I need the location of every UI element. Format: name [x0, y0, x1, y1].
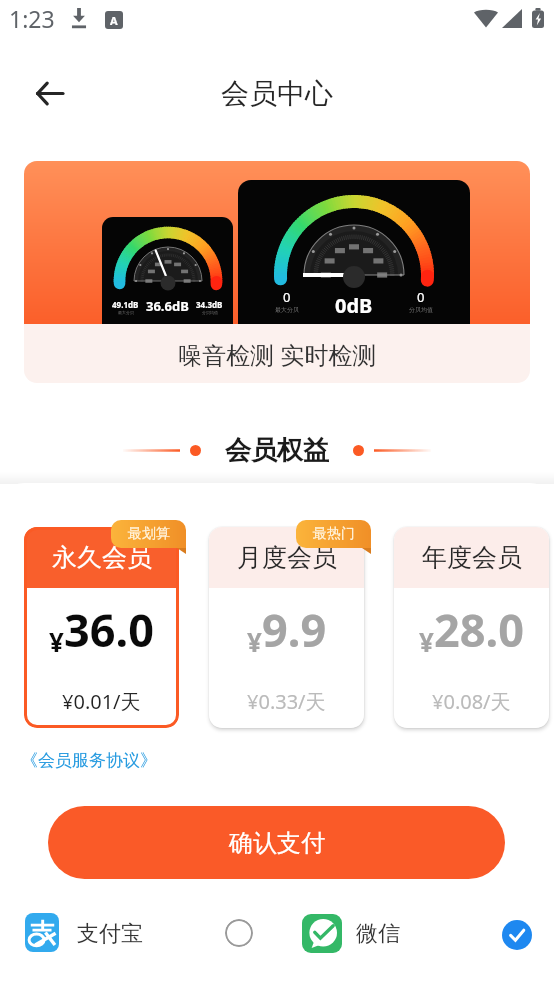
staticText: 月度会员 [237, 542, 337, 573]
button[interactable]: WeChat selected [502, 920, 532, 950]
button[interactable]: 《会员服务协议》 [21, 750, 157, 771]
staticText: ¥0.01/天 [62, 688, 141, 715]
staticText: 0dB [335, 292, 373, 319]
staticText: 噪音检测 实时检测 [178, 338, 377, 371]
staticText: 34.3dB [196, 299, 223, 310]
staticText: 会员权益 [225, 434, 329, 467]
staticText: 微信 [356, 920, 400, 948]
staticText: ¥0.33/天 [247, 688, 326, 715]
staticText: A [110, 13, 118, 28]
staticText: ¥0.08/天 [432, 688, 511, 715]
staticText: 确认支付 [229, 828, 325, 858]
staticText: 支付宝 [77, 920, 143, 948]
button[interactable]: 年度会员 [394, 527, 549, 728]
staticText: 36.0 [64, 599, 154, 660]
staticText: 分贝均值 [409, 306, 433, 314]
staticText: 36.6dB [146, 297, 189, 315]
button[interactable]: 确认支付 [48, 806, 505, 879]
staticText: 会员中心 [221, 76, 333, 111]
staticText: ¥ [49, 624, 64, 659]
staticText: 永久会员 [52, 542, 152, 573]
staticText: 分贝均值 [202, 310, 218, 315]
staticText: 0 [417, 288, 425, 306]
button[interactable]: 永久会员 [24, 527, 179, 728]
staticText: 最大分贝 [118, 310, 134, 315]
staticText: 最大分贝 [275, 306, 299, 314]
staticText: 49.1dB [112, 299, 139, 310]
staticText: 最热门 [313, 525, 355, 543]
staticText: 9.9 [262, 599, 327, 660]
staticText: ¥ [419, 624, 434, 659]
staticText: 0 [283, 288, 291, 306]
button[interactable]: Back [26, 69, 74, 117]
staticText: 1:23 [9, 3, 55, 34]
staticText: 28.0 [434, 599, 524, 660]
staticText: 最划算 [128, 525, 170, 543]
staticText: 年度会员 [422, 542, 522, 573]
button[interactable]: 月度会员 [209, 527, 364, 728]
button[interactable]: Select Alipay [225, 919, 253, 947]
staticText: ¥ [247, 624, 262, 659]
